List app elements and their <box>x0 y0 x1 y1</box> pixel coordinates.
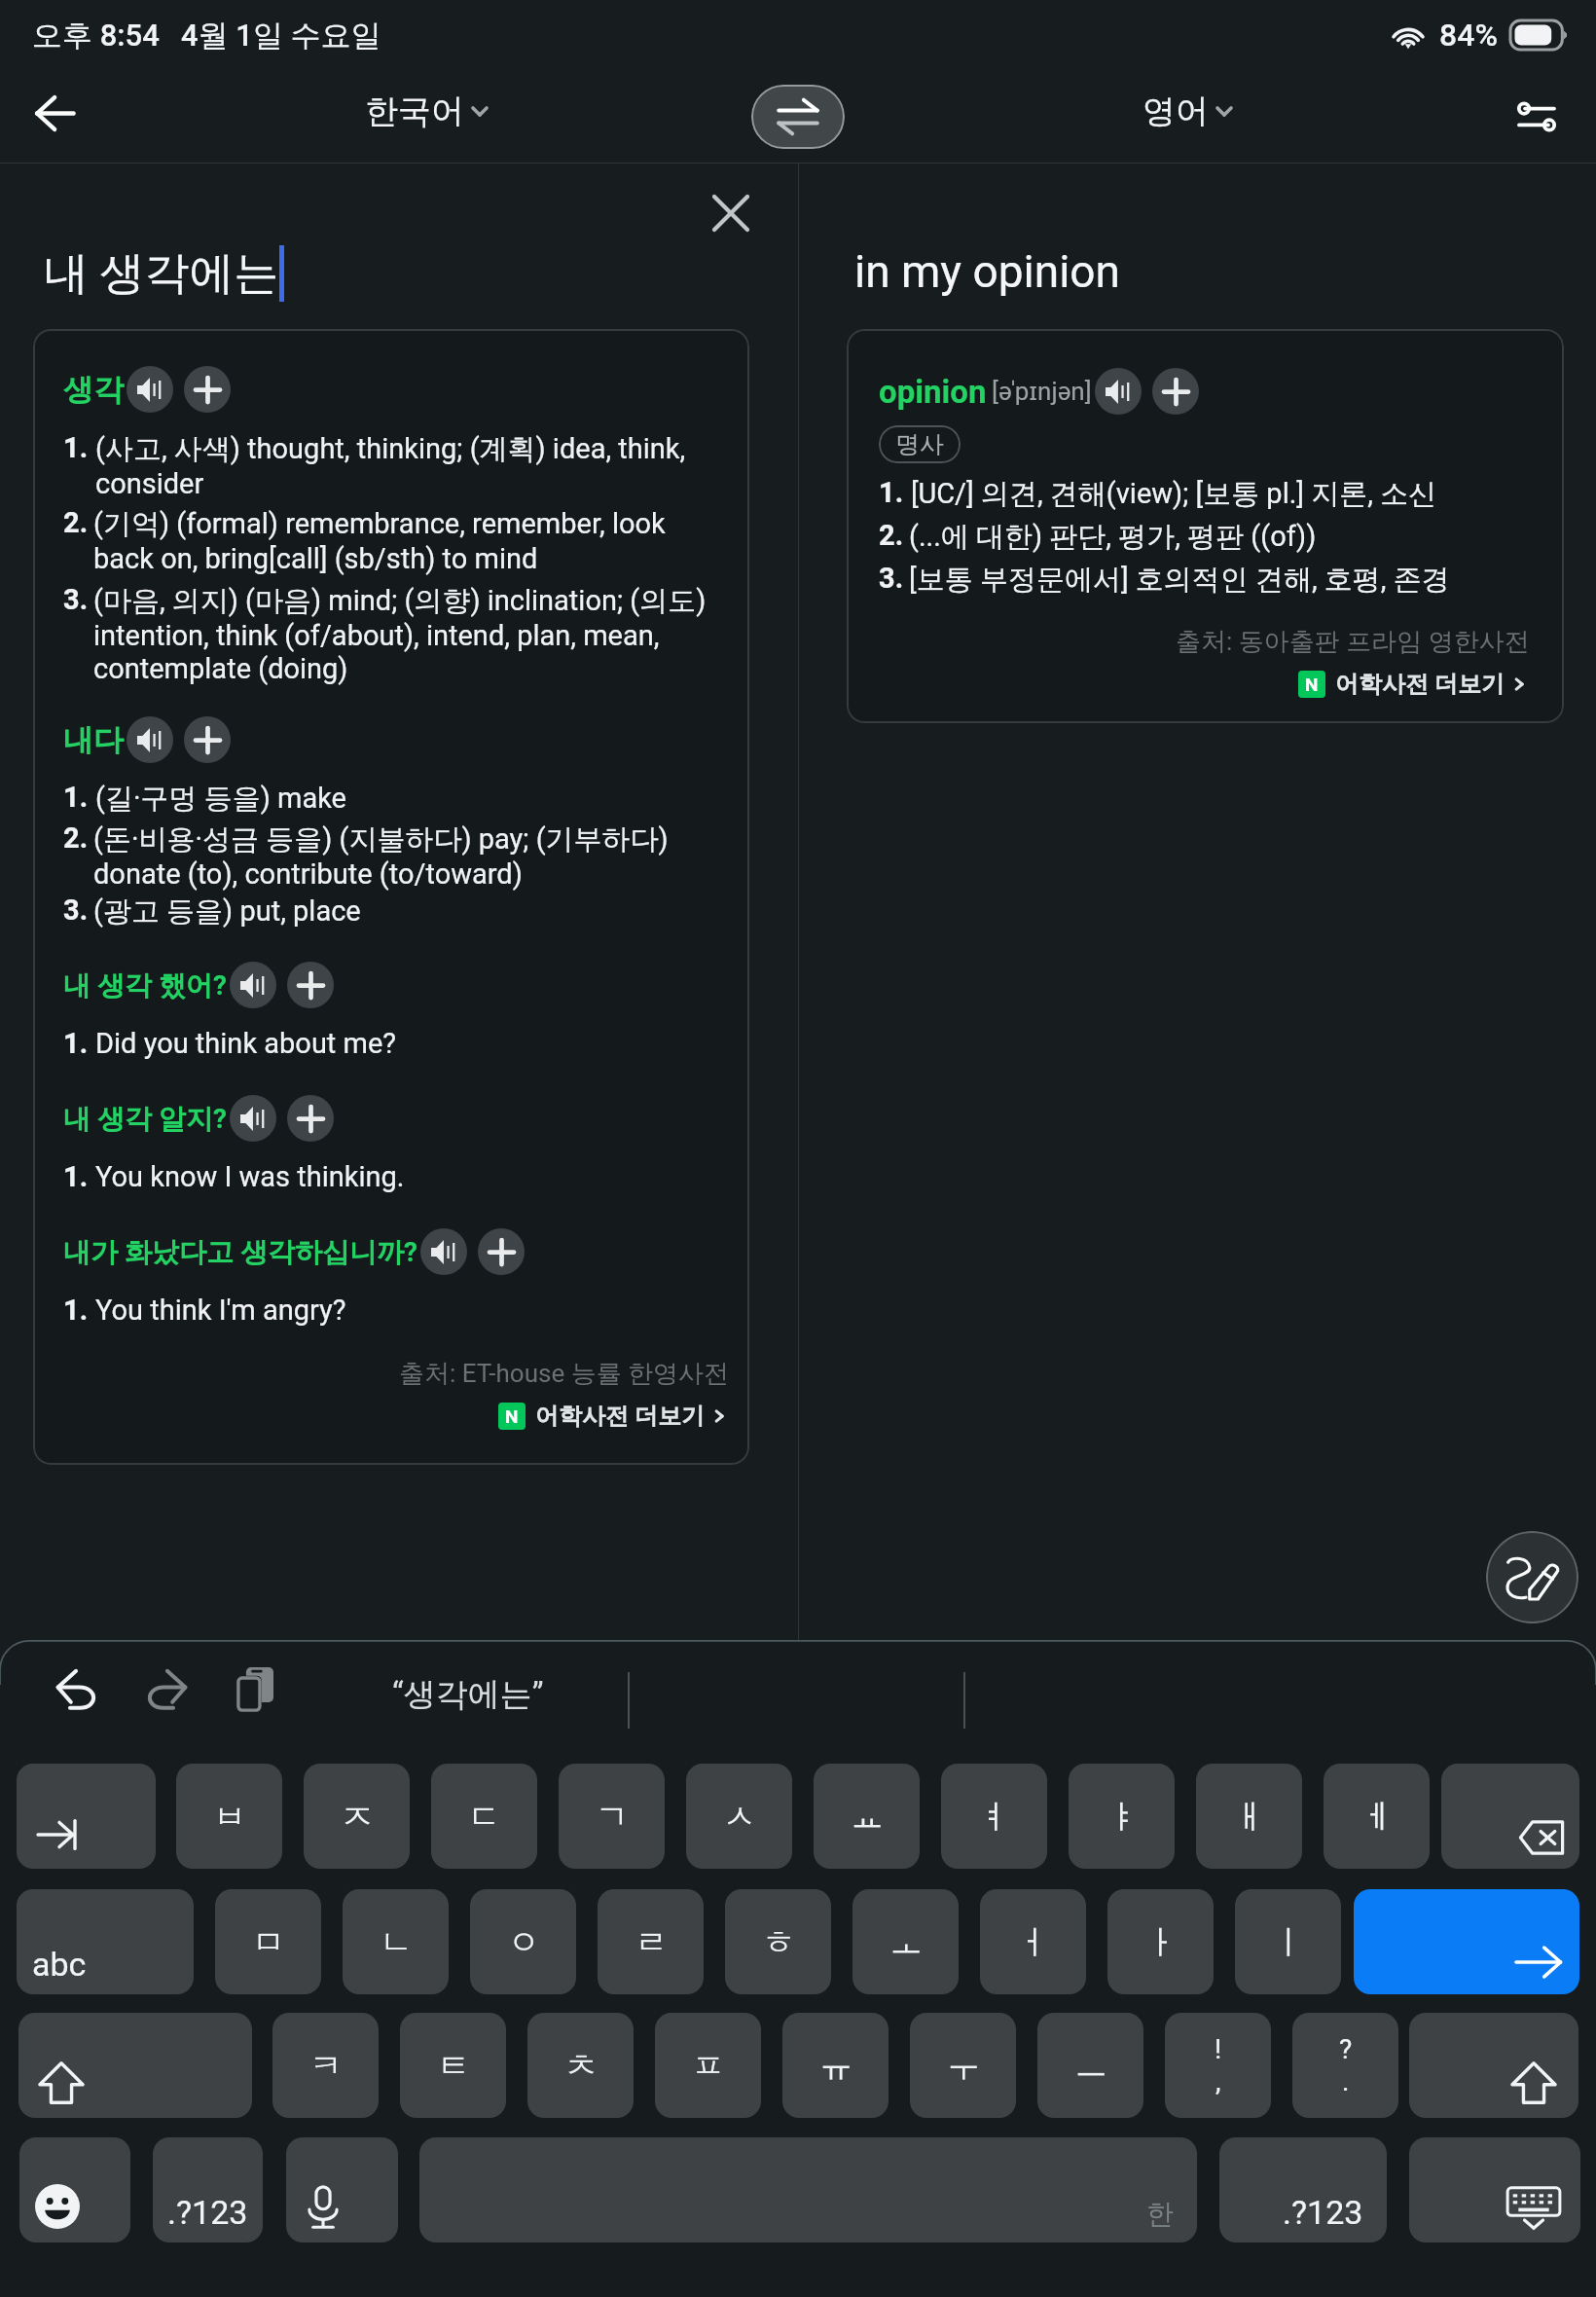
button[interactable]: Shift <box>1409 2013 1578 2118</box>
button[interactable]: 한국어 <box>359 81 493 142</box>
staticText: 3. <box>63 583 89 616</box>
button[interactable]: Add to word list <box>1152 368 1199 415</box>
button[interactable]: Swap languages <box>751 85 845 149</box>
staticText: N <box>1305 674 1319 695</box>
button[interactable]: Clipboard <box>228 1662 282 1717</box>
button[interactable]: ㅠ <box>782 2013 889 2118</box>
staticText: ㅌ <box>437 2045 470 2087</box>
button[interactable]: .?123 <box>1219 2137 1387 2242</box>
button[interactable]: ㅗ <box>852 1889 959 1994</box>
staticText: 내 생각에는 <box>44 245 279 302</box>
staticText: ㅡ <box>1074 2045 1107 2087</box>
button[interactable]: Enter <box>1354 1889 1579 1994</box>
button[interactable]: ㅁ <box>215 1889 321 1994</box>
button[interactable]: Voice input <box>286 2137 398 2242</box>
staticText: [əˈpɪnjən] <box>992 377 1092 406</box>
staticText: ㅊ <box>564 2045 598 2087</box>
button[interactable]: Undo <box>50 1662 104 1717</box>
staticText: ㅁ <box>252 1921 285 1963</box>
button[interactable]: ㄹ <box>598 1889 704 1994</box>
button[interactable]: ㅎ <box>725 1889 831 1994</box>
button[interactable]: ㅡ <box>1037 2013 1143 2118</box>
button[interactable]: abc <box>17 1889 194 1994</box>
staticText: 3. <box>879 562 904 595</box>
button[interactable]: Add to word list <box>184 716 231 763</box>
button[interactable]: ㄱ <box>559 1764 665 1869</box>
staticText: .?123 <box>167 2193 248 2232</box>
button[interactable]: ㅐ <box>1196 1764 1302 1869</box>
staticText: 출처: 동아출판 프라임 영한사전 <box>1176 626 1530 658</box>
button[interactable]: ㅏ <box>1107 1889 1214 1994</box>
button[interactable]: 영어 <box>1137 81 1238 142</box>
staticText: 1. <box>63 1027 89 1060</box>
button[interactable]: Clear text <box>703 185 759 241</box>
staticText: 1. <box>63 1160 89 1193</box>
button[interactable]: ㅕ <box>941 1764 1047 1869</box>
staticText: 출처: ET-house 능률 한영사전 <box>399 1358 730 1390</box>
staticText: ㅋ <box>309 2045 343 2087</box>
button[interactable]: ㅋ <box>272 2013 379 2118</box>
staticText: 84% <box>1439 17 1498 54</box>
staticText: 오후 8:54 <box>32 17 160 55</box>
button[interactable]: Listen <box>1095 368 1142 415</box>
button[interactable]: ㄴ <box>343 1889 449 1994</box>
staticText: ㅈ <box>341 1796 374 1838</box>
button[interactable]: ㅈ <box>304 1764 410 1869</box>
staticText: [UC/] 의견, 견해(view); [보통 pl.] 지론, 소신 <box>911 476 1437 512</box>
button[interactable]: N <box>1296 668 1530 701</box>
staticText: ㅎ <box>762 1921 795 1963</box>
staticText: ㅐ <box>1233 1796 1266 1838</box>
button[interactable]: N <box>496 1400 730 1433</box>
staticText: 1. <box>63 431 89 464</box>
button[interactable]: Handwriting input <box>1486 1531 1578 1623</box>
button[interactable]: Add to word list <box>287 1095 334 1142</box>
button[interactable]: ㅅ <box>686 1764 792 1869</box>
staticText: ㅔ <box>1360 1796 1394 1838</box>
staticText: You know I was thinking. <box>95 1160 405 1193</box>
button[interactable]: ㅊ <box>527 2013 634 2118</box>
button[interactable]: .?123 <box>153 2137 263 2242</box>
button[interactable]: Tab <box>17 1764 156 1869</box>
button[interactable]: Exclamation comma <box>1165 2013 1271 2118</box>
button[interactable]: Redo <box>139 1662 194 1717</box>
button[interactable]: ㅑ <box>1069 1764 1175 1869</box>
button[interactable]: Listen <box>127 366 173 413</box>
staticText: ㅑ <box>1106 1796 1139 1838</box>
button[interactable]: Listen <box>127 716 173 763</box>
staticText: 1. <box>879 476 904 509</box>
button[interactable]: Settings <box>1503 83 1571 151</box>
staticText: ㅗ <box>889 1921 923 1963</box>
button[interactable]: Add to word list <box>478 1228 525 1275</box>
button[interactable]: Listen <box>420 1228 467 1275</box>
button[interactable]: Shift <box>18 2013 252 2118</box>
button[interactable]: ㅣ <box>1235 1889 1341 1994</box>
button[interactable]: Hide keyboard <box>1409 2137 1580 2242</box>
button[interactable]: Listen <box>230 962 276 1008</box>
button[interactable]: ㅍ <box>655 2013 761 2118</box>
staticText: ㅂ <box>213 1796 246 1838</box>
button[interactable]: ㅔ <box>1324 1764 1430 1869</box>
staticText: ㅓ <box>1017 1921 1050 1963</box>
button[interactable]: ㅇ <box>470 1889 576 1994</box>
button[interactable]: Emoji <box>19 2137 130 2242</box>
button[interactable]: ㅜ <box>910 2013 1016 2118</box>
button[interactable]: Listen <box>230 1095 276 1142</box>
button[interactable]: ㅛ <box>814 1764 920 1869</box>
button[interactable]: Add to word list <box>287 962 334 1008</box>
button[interactable]: ㅌ <box>400 2013 506 2118</box>
button[interactable]: Space <box>419 2137 1197 2242</box>
staticText: ㅇ <box>507 1921 540 1963</box>
button[interactable]: ㄷ <box>431 1764 537 1869</box>
staticText: 2. <box>63 506 89 539</box>
button[interactable]: ㅓ <box>980 1889 1086 1994</box>
staticText: ㄱ <box>596 1796 629 1838</box>
button[interactable]: Add to word list <box>184 366 231 413</box>
button[interactable]: Question period <box>1292 2013 1398 2118</box>
staticText: , <box>1215 2065 1221 2097</box>
button[interactable]: Back <box>20 79 89 147</box>
staticText: 어학사전 더보기 <box>535 1402 705 1431</box>
staticText: (기억) (formal) remembrance, remember, loo… <box>93 506 730 575</box>
button[interactable]: ㅂ <box>176 1764 282 1869</box>
button[interactable]: Backspace <box>1441 1764 1579 1869</box>
staticText: ㅣ <box>1272 1921 1305 1963</box>
